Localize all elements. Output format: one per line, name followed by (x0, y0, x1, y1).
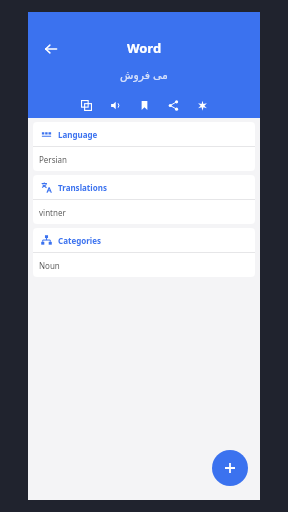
button[interactable]: Language (33, 122, 255, 171)
button[interactable]: Pronounce (105, 95, 125, 115)
staticText: Categories (58, 235, 101, 246)
staticText: می فروش (28, 67, 260, 82)
button[interactable]: Back (36, 34, 66, 64)
button[interactable]: Copy (76, 95, 96, 115)
staticText: vintner (39, 207, 66, 218)
button[interactable]: Bookmark (134, 95, 154, 115)
staticText: Word (28, 39, 260, 57)
button[interactable]: Categories (33, 228, 255, 277)
button[interactable]: Add (212, 450, 248, 486)
button[interactable]: Translations (33, 175, 255, 224)
staticText: Translations (58, 182, 107, 193)
staticText: Persian (39, 154, 67, 165)
button[interactable]: Magic (192, 95, 212, 115)
staticText: Noun (39, 260, 60, 271)
button[interactable]: Share (163, 95, 183, 115)
staticText: Language (58, 129, 98, 140)
